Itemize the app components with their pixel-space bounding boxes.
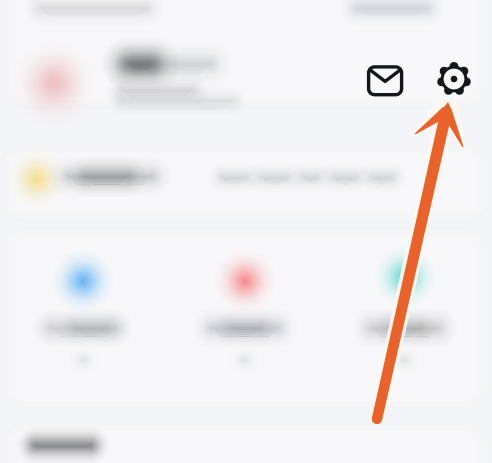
button[interactable]: Mail [363, 59, 407, 99]
button[interactable]: Settings [430, 55, 478, 103]
